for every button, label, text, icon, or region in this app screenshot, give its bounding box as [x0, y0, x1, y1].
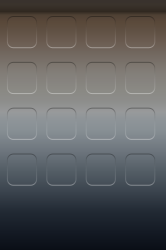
- button[interactable]: App icon placeholder: [86, 108, 116, 140]
- button[interactable]: App icon placeholder: [46, 154, 76, 186]
- button[interactable]: App icon placeholder: [125, 16, 155, 48]
- button[interactable]: App icon placeholder: [46, 108, 76, 140]
- button[interactable]: App icon placeholder: [7, 154, 37, 186]
- button[interactable]: App icon placeholder: [7, 62, 37, 94]
- button[interactable]: App icon placeholder: [86, 154, 116, 186]
- button[interactable]: App icon placeholder: [125, 62, 155, 94]
- button[interactable]: App icon placeholder: [125, 108, 155, 140]
- button[interactable]: App icon placeholder: [86, 62, 116, 94]
- button[interactable]: App icon placeholder: [46, 62, 76, 94]
- button[interactable]: App icon placeholder: [86, 16, 116, 48]
- button[interactable]: App icon placeholder: [125, 154, 155, 186]
- button[interactable]: App icon placeholder: [7, 108, 37, 140]
- button[interactable]: App icon placeholder: [7, 16, 37, 48]
- button[interactable]: App icon placeholder: [46, 16, 76, 48]
